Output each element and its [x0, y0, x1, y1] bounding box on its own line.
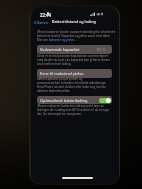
- staticText: det, for eksempel om morgenen.: [37, 112, 82, 116]
- staticText: med da det var nytt. Lav kapasitet kan g…: [37, 58, 110, 62]
- staticText: Hvis iPhone uventet slukker eller lader …: [37, 85, 106, 89]
- staticText: Batteritilstand og lading: [52, 19, 96, 24]
- staticText: 22:44: [40, 12, 52, 18]
- staticText: batterikapasitet proporsjonalt og: [37, 77, 83, 81]
- staticText: batteriets levetid. Kapasitet og ytelse …: [37, 34, 111, 38]
- staticText: iPhone-batterier bruker avansert teknolo…: [37, 30, 116, 34]
- staticText: Mer om: [37, 38, 49, 42]
- staticText: Optimalisert batterilading: [40, 98, 88, 103]
- button[interactable]: batterier og ytelse...: [49, 38, 77, 42]
- staticText: bruk mellom hver lading.: [37, 62, 72, 66]
- staticText: aktivere batteriets alder.: [37, 89, 70, 93]
- staticText: Batteri: [37, 20, 49, 25]
- button[interactable]: Batteri: [33, 19, 50, 26]
- staticText: Vedvarende kapasitet: [40, 47, 80, 52]
- button[interactable]: Optimalisert batterilading på: [99, 98, 111, 103]
- staticText: Evne til maksimal ytelse: [40, 71, 84, 76]
- button[interactable]: Evne til maksimal ytelse: [37, 69, 112, 78]
- button[interactable]: Optimalisert batterilading: [37, 96, 112, 104]
- staticText: Dette er et mål på batterikapasiteten sa…: [37, 54, 108, 58]
- staticText: 80 %: [97, 47, 106, 52]
- button[interactable]: Vedvarende kapasitet: [37, 45, 112, 54]
- staticText: prosessorytelsen forbedres til enkelte a…: [37, 81, 107, 85]
- staticText: ladingen din. Lading over 80 % utsettes …: [37, 108, 110, 112]
- staticText: iPhone reduserer batteriets aldring ved …: [37, 104, 104, 108]
